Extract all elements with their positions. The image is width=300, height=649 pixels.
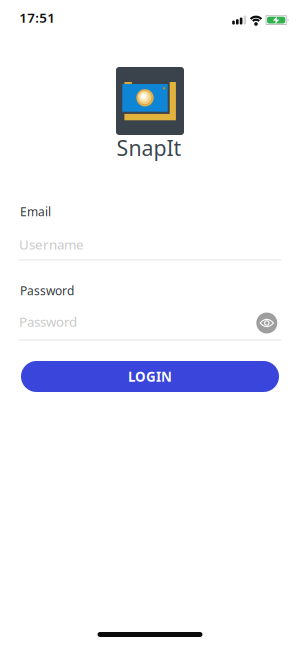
button[interactable]: Username <box>19 233 281 260</box>
button[interactable]: Show password <box>256 312 277 333</box>
staticText: 17:51 <box>19 9 55 26</box>
staticText: Password <box>19 313 77 330</box>
button[interactable]: LOGIN <box>21 361 279 392</box>
staticText: Username <box>19 235 84 253</box>
staticText: LOGIN <box>128 368 172 385</box>
staticText: Password <box>20 282 74 298</box>
staticText: Email <box>20 203 51 219</box>
staticText: SnapIt <box>116 134 181 162</box>
button[interactable]: Password <box>19 313 281 340</box>
